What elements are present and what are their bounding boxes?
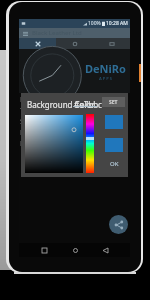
button[interactable]: Widgets — [93, 38, 130, 49]
staticText: OK — [110, 160, 119, 168]
staticText: #e7bbc — [74, 99, 102, 110]
staticText: Background Color — [27, 99, 95, 110]
staticText: Text Color — [20, 106, 53, 116]
button[interactable]: Minutes Color — [19, 127, 130, 138]
button[interactable] — [86, 114, 94, 173]
button[interactable]: Home — [70, 245, 80, 255]
button[interactable]: Recents — [39, 245, 49, 255]
staticText: Hours Color — [20, 139, 60, 149]
button[interactable]: Numbers Color — [19, 94, 130, 105]
button[interactable]: Text Color — [19, 105, 130, 116]
staticText: Minutes Color — [20, 128, 67, 138]
button[interactable]: Seconds Color — [19, 116, 130, 127]
button[interactable]: OK — [105, 159, 124, 169]
staticText: Seconds Color — [20, 117, 67, 127]
button[interactable]: Menu — [21, 29, 29, 37]
staticText: Numbers Color — [20, 95, 71, 105]
staticText: 100% — [88, 20, 101, 27]
button[interactable]: Customize — [19, 38, 56, 49]
button[interactable] — [25, 115, 83, 173]
staticText: DeNiRo — [85, 61, 126, 76]
button[interactable]: Hours Color — [19, 138, 130, 149]
staticText: 10:28 AM — [106, 20, 128, 27]
button[interactable]: Preview — [56, 38, 93, 49]
button[interactable]: SET — [102, 97, 125, 107]
button[interactable]: Back — [100, 245, 110, 255]
staticText: SET — [109, 99, 118, 106]
staticText: A P P S — [99, 76, 113, 81]
button[interactable]: Share — [109, 215, 128, 234]
